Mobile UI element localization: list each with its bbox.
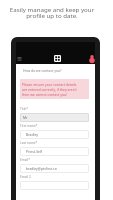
button[interactable]: Mr <box>20 113 89 122</box>
button[interactable]: bradley@ptsfirst.co <box>20 164 89 173</box>
staticText: Easily manage and keep your profile up t… <box>4 5 100 20</box>
staticText: Email* <box>20 158 30 162</box>
staticText: Please ensure your contact details are e… <box>22 82 77 97</box>
staticText: Last name* <box>20 141 38 145</box>
staticText: bradley@ptsfirst.co <box>26 166 57 171</box>
button[interactable]: Account <box>89 55 95 61</box>
button[interactable]: Please ensure your contact details are e… <box>20 79 89 99</box>
staticText: Bradley <box>26 132 38 137</box>
staticText: First name* <box>20 124 38 128</box>
staticText: Title* <box>20 107 29 111</box>
button[interactable] <box>20 181 89 190</box>
button[interactable]: Bradley <box>20 130 89 139</box>
button[interactable]: Logo <box>54 55 61 62</box>
staticText: Priest-Self <box>26 149 42 154</box>
staticText: Mr <box>23 115 28 120</box>
staticText: How do we contact you? <box>23 68 62 73</box>
staticText: Email 2 <box>20 175 31 179</box>
button[interactable]: Menu <box>17 56 22 61</box>
button[interactable]: Priest-Self <box>20 147 89 156</box>
